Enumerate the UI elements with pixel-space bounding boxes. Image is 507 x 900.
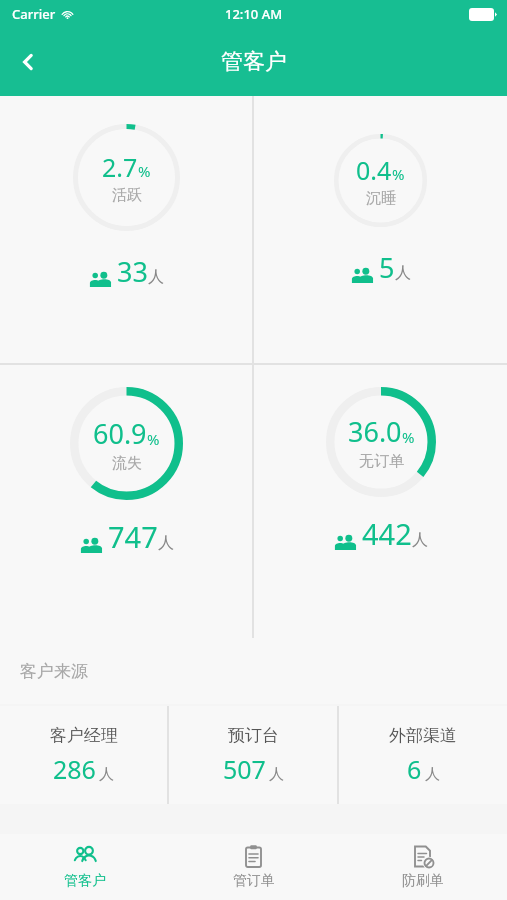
staticText: 管客户 — [221, 48, 287, 76]
button[interactable]: 预订台 — [169, 706, 337, 804]
staticText: 外部渠道 — [389, 725, 457, 746]
staticText: 管订单 — [233, 872, 275, 890]
staticText: 客户经理 — [50, 725, 118, 746]
staticText: % — [392, 164, 405, 184]
staticText: 0.4 — [356, 153, 392, 187]
button[interactable]: 60.9 — [0, 365, 252, 638]
staticText: 管客户 — [64, 872, 106, 890]
button[interactable]: 外部渠道 — [339, 706, 507, 804]
staticText: 507 — [223, 752, 266, 786]
staticText: 防刷单 — [402, 872, 444, 890]
staticText: 人 — [158, 533, 174, 553]
staticText: 活跃 — [112, 186, 142, 205]
button[interactable]: 0.4 — [254, 96, 507, 363]
button[interactable]: 防刷单 — [338, 834, 507, 900]
staticText: 12:10 AM — [225, 5, 283, 23]
staticText: 36.0 — [348, 413, 402, 450]
staticText: 无订单 — [359, 452, 404, 471]
staticText: 人 — [148, 267, 164, 287]
staticText: 沉睡 — [366, 189, 396, 208]
staticText: 预订台 — [228, 725, 279, 746]
staticText: 442 — [362, 514, 412, 553]
staticText: 2.7 — [102, 150, 138, 184]
staticText: % — [402, 427, 415, 447]
staticText: % — [147, 429, 160, 449]
staticText: 人 — [425, 765, 440, 784]
staticText: 60.9 — [93, 415, 147, 452]
staticText: 人 — [269, 765, 284, 784]
staticText: % — [138, 161, 151, 181]
button[interactable]: 管客户 — [0, 834, 169, 900]
button[interactable]: 管订单 — [169, 834, 338, 900]
staticText: 人 — [412, 530, 428, 550]
staticText: 人 — [99, 765, 114, 784]
button[interactable]: 2.7 — [0, 96, 252, 363]
staticText: 流失 — [112, 454, 142, 473]
staticText: 33 — [117, 253, 148, 290]
staticText: Carrier — [12, 5, 56, 23]
staticText: 6 — [407, 752, 422, 786]
button[interactable]: 客户经理 — [0, 706, 167, 804]
button[interactable]: Back — [0, 34, 56, 90]
staticText: 客户来源 — [20, 661, 88, 682]
button[interactable]: 36.0 — [254, 365, 507, 638]
staticText: 人 — [395, 263, 411, 283]
staticText: 5 — [379, 249, 395, 286]
staticText: 286 — [53, 752, 96, 786]
staticText: 747 — [108, 517, 158, 556]
